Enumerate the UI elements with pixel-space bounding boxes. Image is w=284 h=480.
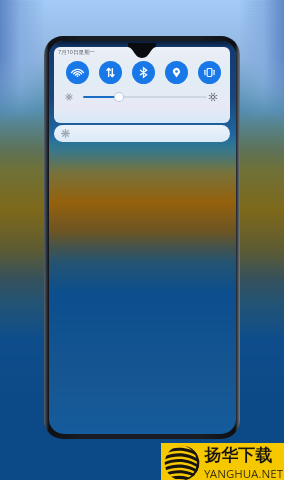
button[interactable]: Mobile data (99, 61, 122, 84)
staticText: YANGHUA.NET (204, 466, 284, 480)
button[interactable]: Wi-Fi (66, 61, 89, 84)
button[interactable]: Location (165, 61, 188, 84)
button[interactable]: Bluetooth (132, 61, 155, 84)
staticText: 扬华下载 (204, 445, 272, 466)
other: yanghua.net watermark (161, 443, 284, 480)
button[interactable]: Vibrate (198, 61, 221, 84)
staticText: 7月10日星期一 (58, 48, 95, 56)
button[interactable]: Notification settings (54, 125, 230, 142)
other: Notification settings (61, 129, 70, 138)
